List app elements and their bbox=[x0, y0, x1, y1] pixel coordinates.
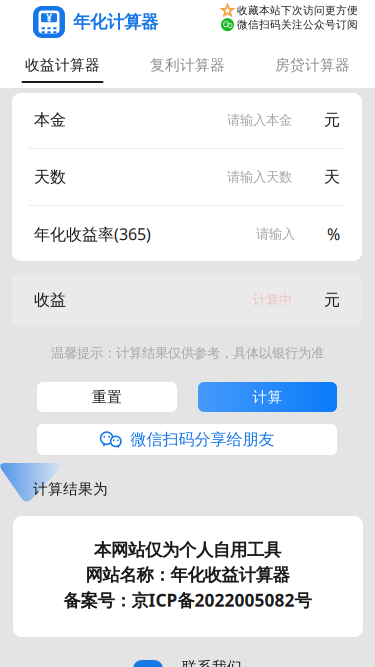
staticText: 请输入本金 bbox=[227, 112, 292, 128]
staticText: 温馨提示：计算结果仅供参考，具体以银行为准 bbox=[51, 345, 324, 361]
staticText: 计算结果为 bbox=[33, 480, 108, 498]
staticText: 复利计算器 bbox=[150, 56, 225, 74]
staticText: 请输入天数 bbox=[227, 169, 292, 185]
button[interactable]: 复利计算器 bbox=[125, 46, 250, 88]
staticText: 收藏本站下次访问更方便 bbox=[237, 4, 358, 17]
button[interactable]: 收藏本站下次访问更方便 bbox=[221, 4, 358, 17]
button[interactable]: 房贷计算器 bbox=[250, 46, 375, 88]
staticText: 联系我们帮助 bbox=[182, 658, 242, 667]
button[interactable]: 微信扫码关注公众号订阅 bbox=[221, 18, 358, 31]
button[interactable]: 重置 bbox=[37, 382, 177, 412]
staticText: 网站名称：年化收益计算器 bbox=[85, 564, 289, 586]
staticText: 计算 bbox=[252, 388, 282, 406]
staticText: 年化收益率(365) bbox=[34, 223, 151, 245]
button[interactable]: 收益计算器 bbox=[0, 46, 125, 88]
staticText: 微信扫码分享给朋友 bbox=[130, 430, 274, 449]
staticText: 本网站仅为个人自用工具 bbox=[94, 539, 281, 561]
staticText: 收益 bbox=[34, 290, 66, 310]
staticText: 元 bbox=[324, 290, 340, 310]
staticText: 计算中 bbox=[253, 292, 292, 308]
staticText: 房贷计算器 bbox=[275, 56, 350, 74]
staticText: 收益计算器 bbox=[25, 56, 100, 74]
staticText: 天 bbox=[324, 167, 340, 187]
staticText: ¥ bbox=[46, 11, 52, 25]
button[interactable]: 计算 bbox=[198, 382, 337, 412]
staticText: 重置 bbox=[92, 388, 122, 406]
button[interactable]: 联系我们帮助 bbox=[176, 661, 248, 667]
button[interactable]: ¥ bbox=[33, 6, 158, 38]
staticText: % bbox=[327, 223, 340, 245]
staticText: 天数 bbox=[34, 167, 66, 187]
staticText: 年化计算器 bbox=[73, 11, 158, 33]
staticText: 本金 bbox=[34, 110, 66, 130]
button[interactable]: 返回顶部 bbox=[133, 660, 163, 667]
button[interactable]: 微信扫码分享给朋友 bbox=[37, 424, 337, 455]
staticText: 备案号：京ICP备2022005082号 bbox=[63, 588, 311, 611]
staticText: 微信扫码关注公众号订阅 bbox=[237, 18, 358, 31]
staticText: 元 bbox=[324, 110, 340, 130]
staticText: 请输入 bbox=[256, 226, 295, 242]
